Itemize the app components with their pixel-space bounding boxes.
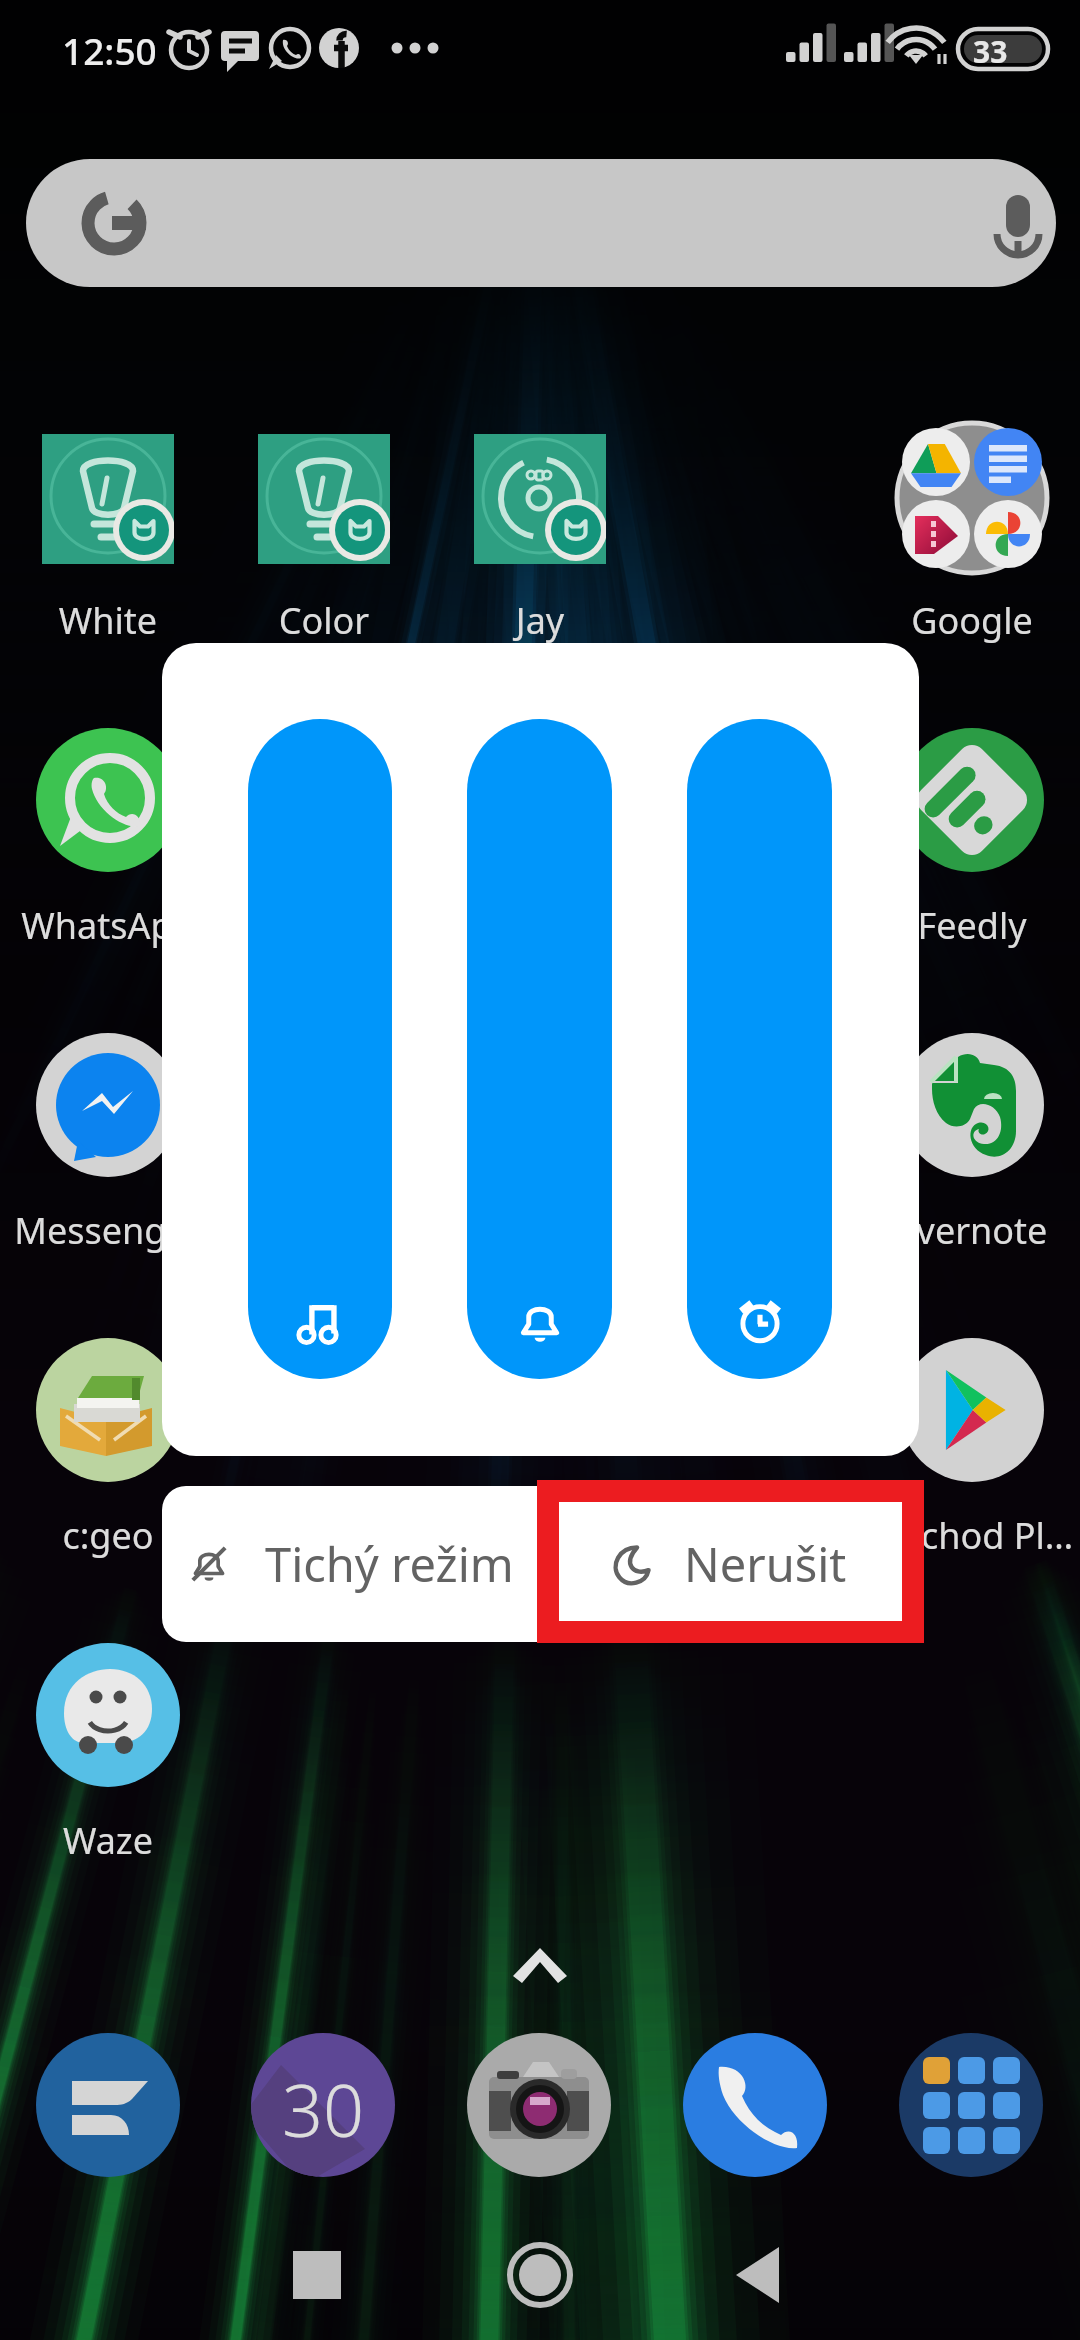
button[interactable]: Open app drawer: [480, 1918, 600, 2008]
button[interactable]: Calendar: [248, 2030, 398, 2180]
button[interactable]: Google folder: [872, 401, 1072, 631]
staticText: WhatsApp: [0, 901, 228, 950]
button[interactable]: Home: [470, 2220, 610, 2330]
staticText: Feedly: [852, 901, 1080, 950]
button[interactable]: Notification volume: [467, 719, 612, 1379]
button[interactable]: Alarm volume: [687, 719, 832, 1379]
staticText: 33: [973, 31, 1008, 72]
staticText: Google: [852, 596, 1080, 645]
button[interactable]: Media volume: [248, 719, 392, 1379]
staticText: 30: [248, 2060, 398, 2158]
staticText: Messenger: [0, 1206, 228, 1255]
staticText: Waze: [0, 1816, 228, 1865]
button[interactable]: Recent apps: [247, 2220, 387, 2330]
staticText: Nerušit: [684, 1532, 847, 1596]
staticText: c:geo: [0, 1511, 228, 1560]
button[interactable]: Waze: [8, 1620, 208, 1850]
button[interactable]: c:geo: [8, 1315, 208, 1545]
staticText: Evernote: [852, 1206, 1080, 1255]
button[interactable]: Obchod Play: [872, 1315, 1072, 1545]
button[interactable]: Tichý režim: [162, 1486, 538, 1642]
button[interactable]: Messenger: [8, 1010, 208, 1240]
button[interactable]: Evernote: [872, 1010, 1072, 1240]
button[interactable]: Camera: [464, 2030, 614, 2180]
button[interactable]: White: [8, 401, 208, 631]
staticText: Obchod Pl…: [852, 1511, 1080, 1560]
button[interactable]: WhatsApp: [8, 705, 208, 935]
staticText: White: [0, 596, 228, 645]
staticText: Jay: [420, 596, 660, 645]
button[interactable]: Phone: [680, 2030, 830, 2180]
staticText: Tichý režim: [265, 1532, 514, 1596]
button[interactable]: All apps: [896, 2030, 1046, 2180]
button[interactable]: Google search: [26, 159, 1056, 287]
button[interactable]: Feedly: [33, 2030, 183, 2180]
button[interactable]: Feedly: [872, 705, 1072, 935]
button[interactable]: Back: [690, 2220, 830, 2330]
staticText: Color: [204, 596, 444, 645]
staticText: 12:50: [62, 25, 157, 75]
button[interactable]: Color: [224, 401, 424, 631]
button[interactable]: Jay: [440, 401, 640, 631]
button[interactable]: Nerušit: [538, 1486, 914, 1642]
